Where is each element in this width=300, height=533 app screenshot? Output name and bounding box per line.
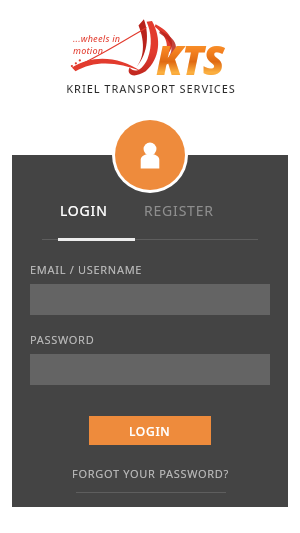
staticText: FORGOT YOUR PASSWORD? [72,466,229,481]
staticText: PASSWORD [30,332,95,347]
button[interactable]: FORGOT YOUR PASSWORD? [66,464,235,495]
staticText: LOGIN [129,423,171,439]
button[interactable]: REGISTER [142,198,216,223]
staticText: EMAIL / USERNAME [30,262,143,277]
staticText: ...wheels in motion [73,32,151,56]
button[interactable]: LOGIN [89,416,211,445]
button[interactable]: Profile [112,117,188,193]
staticText: LOGIN [60,201,108,220]
staticText: KTS [156,32,224,86]
staticText: KRIEL TRANSPORT SERVICES [62,81,240,96]
button[interactable]: LOGIN [58,198,110,223]
staticText: REGISTER [144,201,214,220]
